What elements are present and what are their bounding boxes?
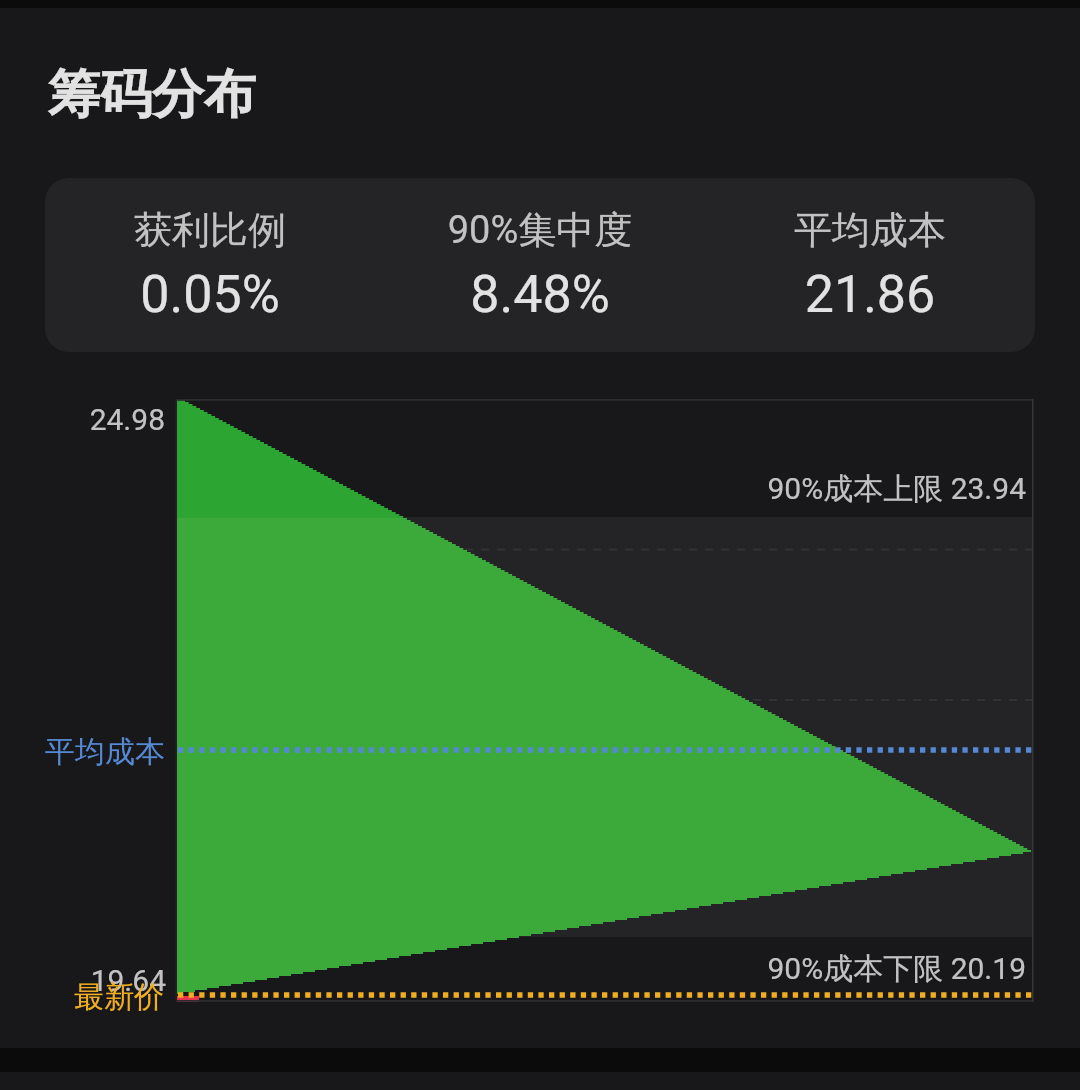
staticText: 21.86 [705, 264, 1035, 325]
staticText: 最新价 [0, 978, 164, 1016]
staticText: 8.48% [375, 264, 705, 325]
staticText: 90%成本下限 20.19 [0, 950, 1026, 988]
staticText: 19.64 [0, 963, 166, 998]
staticText: 90%集中度 [375, 206, 705, 254]
staticText: 0.05% [45, 264, 375, 325]
button[interactable]: 获利比例 [45, 178, 1035, 352]
button[interactable]: 获利比例 [45, 178, 375, 352]
staticText: 获利比例 [45, 206, 375, 254]
staticText: 24.98 [0, 402, 165, 437]
button[interactable]: 90%集中度 [375, 178, 705, 352]
staticText: 筹码分布 [48, 62, 256, 128]
button[interactable]: 筹码分布图 [44, 380, 1036, 1020]
staticText: 90%成本上限 23.94 [0, 470, 1026, 508]
staticText: 平均成本 [0, 733, 165, 771]
button[interactable]: 平均成本 [705, 178, 1035, 352]
staticText: 平均成本 [705, 206, 1035, 254]
